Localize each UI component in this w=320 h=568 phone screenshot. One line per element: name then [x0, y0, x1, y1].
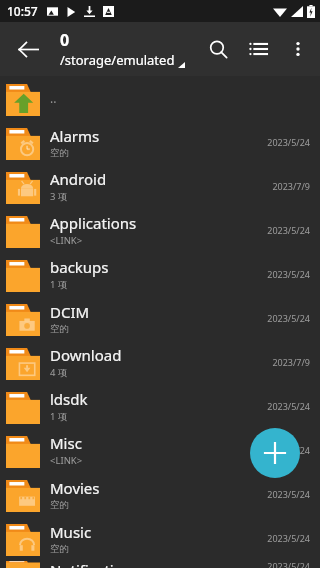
staticText: ldsdk [50, 389, 88, 409]
staticText: 2023/5/24 [267, 268, 310, 280]
button[interactable]: Misc [0, 428, 320, 472]
staticText: <LINK> [50, 454, 83, 467]
button[interactable]: Add [250, 428, 300, 478]
staticText: 2023/5/24 [267, 488, 310, 500]
button[interactable]: Android [0, 164, 320, 208]
staticText: 空的 [50, 543, 69, 555]
staticText: 2023/7/9 [272, 180, 310, 192]
staticText: 3 项 [50, 190, 68, 203]
button[interactable]: Download [0, 340, 320, 384]
staticText: 空的 [50, 499, 69, 511]
staticText: 2023/5/24 [267, 312, 310, 324]
button[interactable]: Applications [0, 208, 320, 252]
staticText: Applications [50, 213, 137, 233]
staticText: 2023/5/24 [267, 532, 310, 544]
button[interactable]: DCIM [0, 296, 320, 340]
staticText: DCIM [50, 302, 90, 322]
button[interactable]: Back [8, 29, 48, 69]
staticText: 2023/5/24 [267, 444, 310, 456]
button[interactable]: Alarms [0, 120, 320, 164]
button[interactable]: 0 [60, 29, 185, 69]
staticText: 空的 [50, 147, 69, 159]
button[interactable]: Search [198, 29, 238, 69]
staticText: Download [50, 345, 122, 365]
staticText: backups [50, 257, 109, 277]
button[interactable]: ldsdk [0, 384, 320, 428]
staticText: Movies [50, 478, 100, 498]
staticText: 2023/5/24 [267, 560, 310, 568]
staticText: 2023/5/24 [267, 224, 310, 236]
staticText: 4 项 [50, 366, 68, 379]
staticText: 2023/5/24 [267, 136, 310, 148]
staticText: 1 项 [50, 278, 68, 291]
staticText: 空的 [50, 323, 69, 335]
button[interactable]: More options [278, 29, 318, 69]
staticText: 0 [60, 29, 70, 51]
button[interactable]: View mode [238, 29, 278, 69]
staticText: /storage/emulated [60, 51, 175, 69]
staticText: 1 项 [50, 410, 68, 423]
staticText: Alarms [50, 126, 100, 146]
staticText: Music [50, 522, 92, 542]
button[interactable]: Movies [0, 472, 320, 516]
button[interactable]: Music [0, 516, 320, 560]
staticText: Notifications [50, 560, 140, 568]
staticText: 2023/7/9 [272, 356, 310, 368]
button[interactable]: backups [0, 252, 320, 296]
staticText: 10:57 [7, 3, 38, 19]
button[interactable]: .. [0, 76, 320, 120]
staticText: <LINK> [50, 234, 83, 247]
button[interactable]: Notifications [0, 560, 320, 568]
staticText: Android [50, 169, 107, 189]
staticText: 2023/5/24 [267, 400, 310, 412]
staticText: Misc [50, 433, 82, 453]
